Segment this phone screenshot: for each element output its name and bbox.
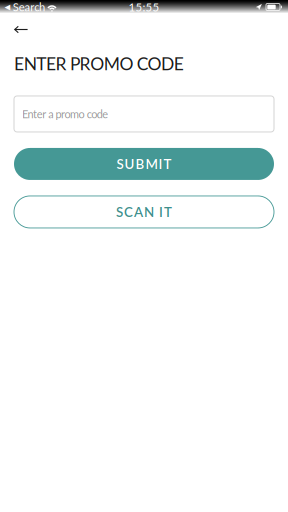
staticText: 15:55 xyxy=(128,0,159,14)
staticText: ◀ xyxy=(4,3,10,11)
staticText: Search xyxy=(13,0,45,14)
staticText: S U B M I T xyxy=(116,156,171,172)
button[interactable]: Back xyxy=(0,22,58,37)
button[interactable]: S U B M I T xyxy=(14,148,274,180)
button[interactable]: S C A N I T xyxy=(14,196,274,228)
staticText: ENTER PROMO CODE xyxy=(14,53,184,74)
staticText: S C A N I T xyxy=(116,204,172,220)
staticText: Enter a promo code xyxy=(22,107,108,120)
